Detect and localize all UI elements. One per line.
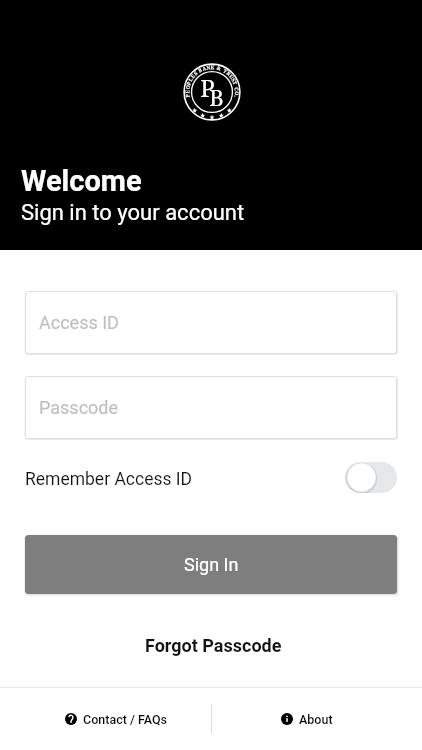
staticText: Sign In [184,554,239,575]
staticText: Sign in to your account [21,200,245,226]
button[interactable]: Remember Access ID [0,455,422,499]
staticText: Passcode [39,397,119,418]
button[interactable]: Contact / FAQs [65,695,168,743]
staticText: Access ID [39,312,119,333]
staticText: About [299,712,333,727]
staticText: Forgot Passcode [145,635,282,656]
button[interactable]: About [281,695,333,743]
button[interactable]: Sign In [25,535,397,594]
staticText: Contact / FAQs [83,712,168,727]
button[interactable]: Forgot Passcode [127,625,300,666]
button[interactable]: Remember Access ID toggle [345,462,397,493]
button[interactable]: Passcode [25,376,397,439]
other: Peoples Bank & Trust Co. logo [183,63,241,121]
button[interactable]: Access ID [25,291,397,354]
staticText: Welcome [21,164,142,198]
staticText: Remember Access ID [25,469,193,490]
